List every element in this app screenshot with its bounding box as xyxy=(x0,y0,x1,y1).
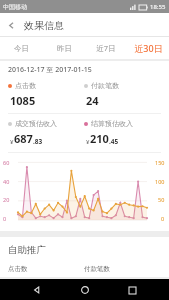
staticText: 0 xyxy=(161,215,165,222)
staticText: 0 xyxy=(3,215,7,222)
button[interactable]: Recents xyxy=(122,280,142,300)
button[interactable]: Back xyxy=(0,14,22,36)
staticText: 昨日 xyxy=(57,44,72,53)
staticText: 1085 xyxy=(10,93,36,108)
staticText: 50 xyxy=(158,196,165,203)
staticText: .45 xyxy=(109,137,119,146)
staticText: 近7日 xyxy=(96,43,116,53)
button[interactable]: 付款笔数 xyxy=(84,81,161,108)
staticText: 100 xyxy=(155,178,165,185)
staticText: 60 xyxy=(3,159,10,166)
staticText: 40 xyxy=(3,178,10,185)
staticText: 效果信息 xyxy=(24,19,64,32)
button[interactable]: Back xyxy=(27,280,47,300)
button[interactable]: 近30日 xyxy=(127,37,169,59)
staticText: 687 xyxy=(14,131,33,146)
staticText: 结算预估收入 xyxy=(91,119,133,128)
staticText: 210 xyxy=(90,131,109,146)
staticText: 18:55 xyxy=(150,3,166,11)
staticText: 24 xyxy=(86,93,99,108)
staticText: 点击数 xyxy=(8,265,84,273)
staticText: 付款笔数 xyxy=(91,81,119,90)
staticText: 付款笔数 xyxy=(84,265,161,273)
staticText: ¥ xyxy=(10,138,14,146)
staticText: 中国移动 xyxy=(3,3,27,11)
button[interactable]: 近7日 xyxy=(85,37,127,59)
staticText: 成交预估收入 xyxy=(15,119,57,128)
button[interactable]: 今日 xyxy=(0,37,43,59)
staticText: 今日 xyxy=(14,44,29,53)
button[interactable]: 成交预估收入 xyxy=(8,119,84,146)
staticText: 150 xyxy=(155,159,165,166)
staticText: 2016-12-17 至 2017-01-15 xyxy=(8,65,92,75)
staticText: 近30日 xyxy=(134,42,163,54)
button[interactable]: 昨日 xyxy=(43,37,85,59)
staticText: 自助推广 xyxy=(8,244,46,256)
button[interactable]: Home xyxy=(75,280,95,300)
button[interactable]: 结算预估收入 xyxy=(84,119,161,146)
staticText: ¥ xyxy=(86,138,90,146)
staticText: 点击数 xyxy=(15,81,36,90)
button[interactable]: 点击数 xyxy=(8,81,84,108)
staticText: .83 xyxy=(33,137,43,146)
staticText: 20 xyxy=(3,196,10,203)
